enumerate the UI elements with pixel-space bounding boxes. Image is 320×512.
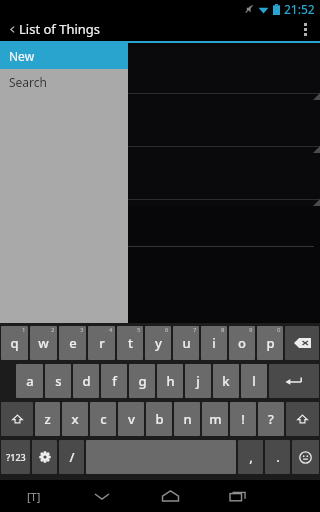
staticText: ? — [268, 410, 274, 428]
button[interactable]: 4 — [88, 326, 115, 360]
button[interactable]: g — [129, 364, 155, 398]
button[interactable]: Up — [5, 17, 19, 41]
staticText: i — [212, 334, 216, 352]
button[interactable]: x — [62, 402, 88, 436]
button[interactable]: z — [35, 402, 60, 436]
staticText: 1 — [22, 326, 26, 334]
staticText: y — [155, 334, 162, 352]
button[interactable]: Subcategory_2 — [0, 153, 320, 206]
staticText: 7 — [193, 326, 197, 334]
staticText: p — [266, 334, 275, 352]
button[interactable]: Backspace — [285, 326, 319, 360]
button[interactable]: j — [185, 364, 211, 398]
button[interactable]: h — [157, 364, 183, 398]
staticText: z — [44, 410, 51, 428]
staticText: 3 — [80, 326, 84, 334]
button[interactable]: 9 — [229, 326, 255, 360]
button[interactable]: , — [238, 440, 263, 474]
button[interactable]: Shift — [1, 402, 33, 436]
button[interactable]: More options — [290, 17, 320, 41]
button[interactable]: Search — [0, 69, 128, 95]
button[interactable]: 0 — [257, 326, 283, 360]
button[interactable]: c — [90, 402, 116, 436]
button[interactable]: 8 — [201, 326, 227, 360]
button[interactable]: Hide keyboard — [68, 480, 136, 512]
staticText: List of Things — [19, 20, 101, 38]
button[interactable]: a — [16, 364, 43, 398]
staticText: u — [182, 334, 191, 352]
button[interactable]: 2 — [30, 326, 57, 360]
staticText: 5 — [137, 326, 141, 334]
button[interactable]: / — [59, 440, 84, 474]
button[interactable]: Category — [0, 47, 320, 100]
button[interactable]: 5 — [117, 326, 143, 360]
staticText: m — [209, 410, 222, 428]
button[interactable]: 3 — [59, 326, 86, 360]
button[interactable]: v — [118, 402, 144, 436]
button[interactable]: 6 — [145, 326, 171, 360]
staticText: c — [100, 410, 107, 428]
button[interactable]: ?123 — [1, 440, 30, 474]
button[interactable]: b — [146, 402, 172, 436]
button[interactable]: Name — [0, 206, 320, 247]
button[interactable]: s — [45, 364, 71, 398]
button[interactable]: Home — [136, 480, 204, 512]
button[interactable]: l — [241, 364, 267, 398]
staticText: [T] — [27, 489, 41, 504]
staticText: . — [276, 448, 280, 466]
staticText: ?123 — [6, 451, 26, 463]
button[interactable]: Subcategory_1 — [0, 100, 320, 153]
staticText: l — [252, 372, 256, 390]
staticText: 2 — [51, 326, 55, 334]
staticText: j — [196, 372, 200, 390]
staticText: 21:52 — [284, 1, 315, 17]
button[interactable]: f — [101, 364, 127, 398]
button[interactable]: Change input method — [0, 480, 68, 512]
button[interactable]: k — [213, 364, 239, 398]
staticText: f — [112, 372, 117, 390]
staticText: r — [99, 334, 105, 352]
staticText: b — [155, 410, 164, 428]
staticText: 6 — [165, 326, 169, 334]
staticText: Category — [9, 52, 48, 64]
button[interactable]: m — [202, 402, 228, 436]
staticText: v — [128, 410, 135, 428]
staticText: n — [183, 410, 192, 428]
button[interactable]: Recent apps — [204, 480, 272, 512]
button[interactable]: 7 — [173, 326, 199, 360]
staticText: x — [71, 410, 79, 428]
staticText: 0 — [277, 326, 281, 334]
staticText: s — [55, 372, 62, 390]
button[interactable]: Enter — [269, 364, 319, 398]
staticText: 4 — [109, 326, 113, 334]
staticText: q — [10, 334, 19, 352]
button[interactable]: Emoji — [292, 440, 319, 474]
staticText: / — [69, 448, 75, 466]
staticText: ! — [241, 410, 245, 428]
button[interactable]: New — [0, 43, 128, 69]
button[interactable]: . — [265, 440, 290, 474]
button[interactable]: 1 — [1, 326, 28, 360]
staticText: d — [82, 372, 91, 390]
button[interactable]: ! — [230, 402, 256, 436]
staticText: New — [9, 48, 35, 64]
staticText: None — [17, 68, 51, 86]
button[interactable]: Shift — [286, 402, 319, 436]
staticText: Search — [9, 74, 47, 90]
staticText: 9 — [249, 326, 253, 334]
button[interactable]: n — [174, 402, 200, 436]
staticText: e — [69, 334, 77, 352]
button[interactable]: Settings — [32, 440, 57, 474]
staticText: , — [249, 448, 253, 466]
button[interactable]: Description — [0, 247, 320, 283]
button[interactable]: d — [73, 364, 99, 398]
staticText: h — [166, 372, 175, 390]
button[interactable]: ? — [258, 402, 284, 436]
staticText: k — [222, 372, 230, 390]
